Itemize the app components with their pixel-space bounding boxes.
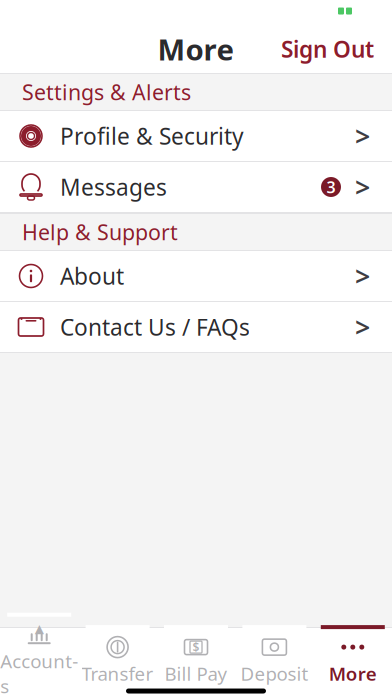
staticText: > (355, 169, 370, 205)
button[interactable]: Sign Out (269, 24, 386, 74)
staticText: Contact Us / FAQs (60, 312, 250, 342)
staticText: > (355, 258, 370, 294)
staticText: About (60, 261, 124, 291)
button[interactable]: Accounts (0, 628, 78, 683)
staticText: Accounts (0, 649, 78, 696)
staticText: Deposit (240, 661, 308, 686)
staticText: > (355, 309, 370, 345)
staticText: $ (192, 639, 199, 655)
staticText: Sign Out (281, 34, 374, 64)
staticText: More (329, 661, 377, 686)
staticText: Transfer (82, 661, 154, 686)
staticText: ▲ (35, 622, 44, 635)
button[interactable]: Bill Pay (157, 628, 235, 683)
button[interactable]: Messages (0, 162, 392, 212)
staticText: Help & Support (22, 218, 178, 246)
button[interactable]: Deposit (235, 628, 314, 683)
button[interactable]: Contact Us / FAQs (0, 302, 392, 352)
button[interactable]: Transfer (78, 628, 157, 683)
staticText: Profile & Security (60, 121, 244, 151)
staticText: Bill Pay (164, 661, 227, 686)
staticText: > (355, 118, 370, 154)
staticText: Messages (60, 172, 167, 202)
staticText: 3 (326, 176, 335, 198)
button[interactable]: Profile & Security (0, 111, 392, 161)
button[interactable]: More (314, 628, 392, 683)
staticText: More (157, 29, 234, 68)
button[interactable]: About (0, 251, 392, 301)
staticText: Settings & Alerts (22, 78, 191, 106)
